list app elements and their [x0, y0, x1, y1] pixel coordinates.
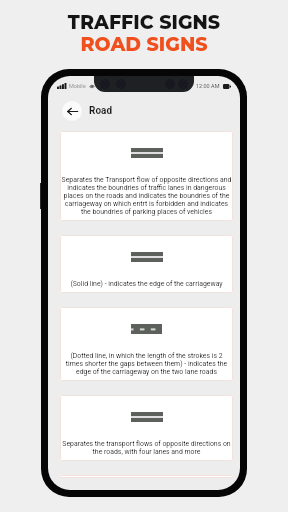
staticText: TRAFFIC SIGNS: [0, 11, 288, 34]
button[interactable]: Back: [62, 101, 82, 121]
staticText: 12:00 AM: [196, 83, 220, 89]
staticText: Road: [89, 105, 113, 117]
button[interactable]: Separates the Transport flow of opposite…: [60, 131, 233, 221]
button[interactable]: (Solid line) - indicates the edge of the…: [60, 235, 233, 293]
staticText: Separates the transport flows of opposit…: [61, 440, 232, 456]
staticText: (Solid line) - indicates the edge of the…: [70, 280, 223, 288]
button[interactable]: Separates the transport flows of opposit…: [60, 395, 233, 461]
staticText: (Dotted line, in which the length of the…: [61, 352, 232, 376]
staticText: Separates the Transport flow of opposite…: [61, 176, 232, 216]
staticText: Mobile: [69, 83, 86, 89]
staticText: ROAD SIGNS: [0, 33, 288, 56]
button[interactable]: (Dotted line, in which the length of the…: [60, 307, 233, 381]
button[interactable]: [60, 475, 233, 478]
